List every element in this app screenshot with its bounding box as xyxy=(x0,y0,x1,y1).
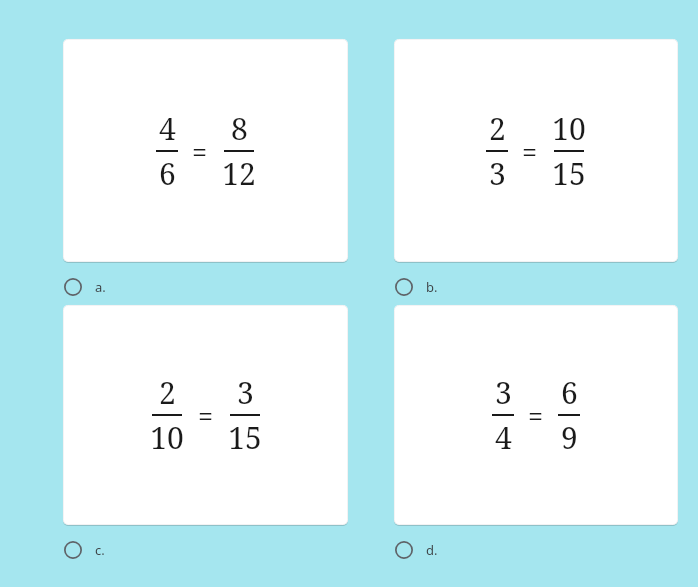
staticText: 3 xyxy=(237,372,254,413)
button[interactable]: 4 xyxy=(63,39,348,262)
staticText: 2 xyxy=(159,372,176,413)
staticText: = xyxy=(192,133,208,170)
staticText: = xyxy=(528,397,544,434)
staticText: c. xyxy=(95,541,105,559)
staticText: 10 xyxy=(552,108,586,149)
button[interactable]: 2 xyxy=(394,39,678,262)
staticText: 4 xyxy=(495,417,512,458)
staticText: 2 xyxy=(489,108,506,149)
staticText: 10 xyxy=(150,417,184,458)
staticText: 8 xyxy=(231,108,248,149)
staticText: d. xyxy=(426,541,438,559)
staticText: = xyxy=(522,133,538,170)
staticText: 6 xyxy=(561,372,578,413)
staticText: 15 xyxy=(228,417,262,458)
staticText: 15 xyxy=(552,153,586,194)
staticText: b. xyxy=(426,278,438,296)
staticText: a. xyxy=(95,278,106,296)
button[interactable]: Answer option a. xyxy=(63,274,106,300)
button[interactable]: Answer option b. xyxy=(394,274,438,300)
button[interactable]: 2 xyxy=(63,305,348,525)
button[interactable]: 3 xyxy=(394,305,678,525)
button[interactable]: Answer option c. xyxy=(63,537,105,563)
staticText: 3 xyxy=(489,153,506,194)
button[interactable]: Answer option d. xyxy=(394,537,438,563)
staticText: = xyxy=(198,397,214,434)
staticText: 4 xyxy=(159,108,176,149)
staticText: 9 xyxy=(561,417,578,458)
staticText: 12 xyxy=(222,153,256,194)
staticText: 3 xyxy=(495,372,512,413)
staticText: 6 xyxy=(159,153,176,194)
